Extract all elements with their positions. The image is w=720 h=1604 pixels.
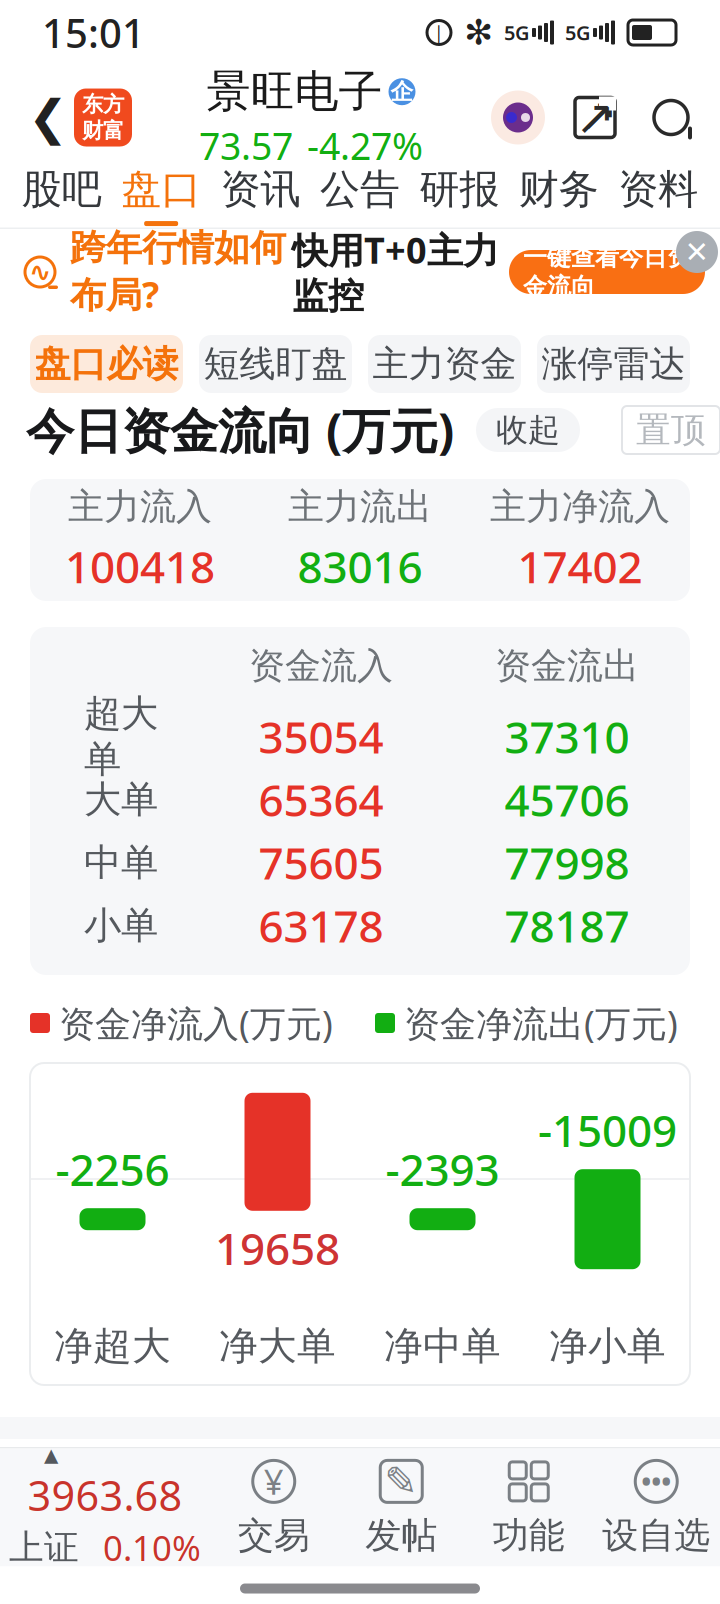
staticText: 短线盯盘: [203, 342, 347, 386]
staticText: 中单: [84, 840, 158, 885]
staticText: 上证: [9, 1526, 79, 1569]
staticText: ▲: [44, 1444, 58, 1466]
staticText: 净小单: [549, 1322, 666, 1370]
staticText: ¥: [264, 1458, 284, 1504]
staticText: 收起: [496, 410, 560, 450]
staticText: 超大单: [84, 691, 158, 782]
staticText: 小单: [84, 903, 158, 948]
staticText: 企: [390, 78, 413, 106]
staticText: 19658: [215, 1219, 340, 1277]
staticText: 财富: [82, 117, 124, 144]
staticText: 一键查看今日资金流向: [523, 242, 691, 301]
staticText: 83016: [297, 537, 422, 595]
staticText: ∿: [29, 257, 51, 287]
staticText: 15:01: [42, 6, 145, 59]
staticText: 资料: [618, 165, 698, 214]
staticText: -2393: [385, 1140, 499, 1198]
staticText: 75605: [258, 833, 383, 892]
button[interactable]: 功能: [465, 1448, 592, 1566]
staticText: 财务: [519, 165, 599, 214]
button[interactable]: 盘口必读: [30, 335, 183, 393]
staticText: 100418: [65, 537, 215, 595]
button[interactable]: Back: [22, 82, 74, 152]
staticText: 77998: [504, 833, 629, 892]
staticText: 17402: [517, 537, 642, 595]
button[interactable]: ▲: [0, 1448, 210, 1566]
staticText: 资金流出: [495, 644, 639, 688]
staticText: 65364: [258, 770, 383, 829]
staticText: 63178: [258, 896, 383, 955]
button[interactable]: 研报: [410, 163, 509, 227]
staticText: ✕: [684, 235, 709, 269]
button[interactable]: 短线盯盘: [199, 335, 352, 393]
staticText: 大单: [84, 777, 158, 822]
staticText: ❮: [28, 90, 68, 145]
staticText: 45706: [504, 770, 629, 829]
staticText: ✻: [464, 13, 493, 52]
staticText: 置顶: [636, 409, 706, 451]
staticText: 净超大: [54, 1322, 171, 1370]
staticText: 交易: [238, 1513, 310, 1558]
staticText: |: [434, 21, 444, 44]
staticText: 主力净流入: [490, 485, 670, 529]
staticText: 37310: [504, 707, 629, 766]
staticText: 净大单: [219, 1322, 336, 1370]
staticText: 功能: [493, 1513, 565, 1558]
staticText: 发帖: [365, 1513, 437, 1558]
staticText: 资金流入: [249, 644, 393, 688]
button[interactable]: 资料: [609, 163, 708, 227]
staticText: 涨停雷达: [541, 342, 685, 386]
staticText: 快用T+0主力监控: [292, 226, 499, 318]
button[interactable]: ¥: [210, 1448, 337, 1566]
staticText: 78187: [504, 896, 629, 955]
button[interactable]: Share: [568, 82, 622, 152]
staticText: ↗: [575, 90, 615, 145]
staticText: 主力流入: [68, 485, 212, 529]
staticText: 73.57: [199, 121, 293, 170]
button[interactable]: 盘口: [111, 163, 211, 227]
staticText: 盘口必读: [34, 342, 178, 386]
staticText: 今日资金流向 (万元): [26, 398, 454, 462]
button[interactable]: 收起: [476, 408, 580, 452]
button[interactable]: East Money home: [74, 88, 132, 146]
staticText: 资讯: [221, 165, 301, 214]
button[interactable]: •••: [592, 1448, 720, 1566]
staticText: 公告: [320, 165, 400, 214]
staticText: 主力资金: [372, 342, 516, 386]
staticText: 资金净流入(万元): [59, 999, 333, 1047]
staticText: -15009: [538, 1101, 677, 1159]
staticText: 股吧: [22, 165, 102, 214]
staticText: 景旺电子: [206, 65, 382, 119]
staticText: •••: [641, 1464, 671, 1499]
staticText: 主力流出: [288, 485, 432, 529]
staticText: 东方: [82, 91, 124, 117]
staticText: ✎: [384, 1459, 418, 1504]
staticText: 3963.68: [27, 1468, 182, 1522]
staticText: 净中单: [384, 1322, 501, 1370]
staticText: 研报: [419, 165, 499, 214]
button[interactable]: 资讯: [211, 163, 310, 227]
staticText: 盘口: [121, 165, 201, 214]
button[interactable]: 公告: [310, 163, 410, 227]
staticText: 设自选: [602, 1513, 710, 1558]
staticText: 跨年行情如何布局?: [70, 226, 286, 318]
staticText: 35054: [258, 707, 383, 766]
button[interactable]: 财务: [509, 163, 608, 227]
staticText: 5G: [565, 19, 591, 46]
staticText: ↗: [580, 89, 618, 140]
staticText: 5G: [504, 19, 530, 46]
button[interactable]: Close banner: [674, 229, 720, 275]
button[interactable]: 置顶: [622, 406, 720, 454]
staticText: 0.10%: [103, 1524, 201, 1570]
staticText: 资金净流出(万元): [404, 999, 678, 1047]
button[interactable]: 涨停雷达: [537, 335, 690, 393]
button[interactable]: 股吧: [12, 163, 111, 227]
button[interactable]: 一键查看今日资金流向: [509, 250, 705, 294]
button[interactable]: AI assistant: [490, 82, 546, 152]
staticText: -4.27%: [307, 121, 423, 170]
button[interactable]: ✎: [337, 1448, 465, 1566]
button[interactable]: Search: [644, 82, 698, 152]
staticText: -2256: [55, 1140, 169, 1198]
button[interactable]: 主力资金: [368, 335, 521, 393]
